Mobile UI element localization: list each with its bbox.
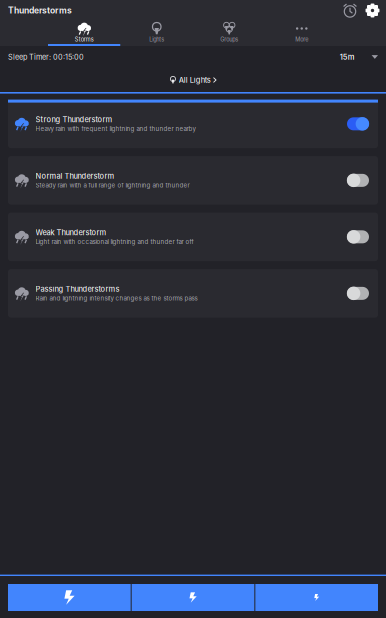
button[interactable]: Passing Thunderstorms — [8, 269, 378, 318]
button[interactable]: Storms — [48, 21, 120, 46]
button[interactable]: All Lights — [0, 68, 386, 92]
staticText: Lights — [149, 36, 164, 43]
button[interactable]: Lights — [120, 21, 193, 46]
button[interactable]: Groups — [193, 21, 265, 46]
staticText: Normal Thunderstorm — [35, 172, 114, 181]
button[interactable]: Sleep timer — [338, 0, 362, 21]
button[interactable]: Medium lightning — [132, 584, 254, 611]
staticText: Light rain with occasional lightning and… — [35, 238, 193, 246]
button[interactable]: Settings — [362, 0, 383, 21]
staticText: Thunderstorms — [8, 5, 72, 16]
staticText: Sleep Timer: 00:15:00 — [8, 53, 84, 61]
staticText: Strong Thunderstorm — [35, 115, 112, 124]
staticText: Steady rain with a full range of lightni… — [35, 182, 189, 189]
staticText: Rain and lightning intensity changes as … — [35, 295, 197, 302]
staticText: Heavy rain with frequent lightning and t… — [35, 125, 195, 133]
staticText: 15m — [340, 52, 355, 61]
staticText: Weak Thunderstorm — [35, 228, 106, 237]
staticText: More — [295, 36, 308, 43]
staticText: All Lights — [179, 75, 211, 84]
button[interactable]: Strong lightning — [8, 584, 131, 611]
staticText: Passing Thunderstorms — [35, 285, 119, 294]
button[interactable]: 15m — [323, 52, 378, 61]
button[interactable]: Weak Thunderstorm — [8, 213, 378, 261]
button[interactable]: Normal Thunderstorm — [8, 156, 378, 205]
button[interactable]: More — [265, 21, 338, 46]
staticText: Groups — [220, 36, 238, 43]
button[interactable]: Weak lightning — [255, 584, 378, 611]
staticText: Storms — [75, 36, 94, 43]
button[interactable]: Strong Thunderstorm — [8, 100, 378, 148]
